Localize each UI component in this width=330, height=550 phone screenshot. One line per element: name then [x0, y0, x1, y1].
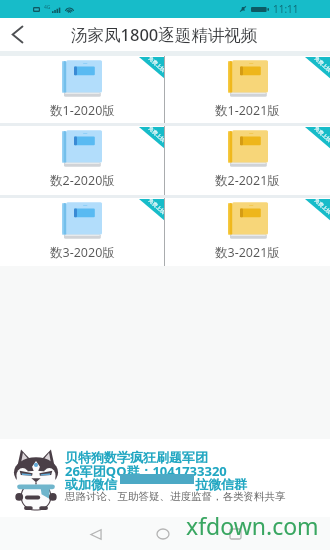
staticText: 免费上线: [314, 197, 330, 215]
staticText: 26军团QQ群：1041733320: [65, 462, 227, 480]
button[interactable]: 数2-2021版: [165, 126, 330, 195]
staticText: 数3-2021版: [215, 244, 280, 261]
staticText: 思路讨论、互助答疑、进度监督，各类资料共享: [65, 490, 286, 503]
staticText: 数1-2020版: [50, 102, 115, 119]
button[interactable]: 数1-2020版: [0, 56, 164, 123]
button[interactable]: 数3-2021版: [165, 198, 330, 266]
button[interactable]: Home: [149, 520, 177, 548]
staticText: 免费上线: [148, 197, 166, 215]
staticText: 数3-2020版: [50, 244, 115, 261]
staticText: 免费上线: [314, 55, 330, 73]
staticText: 免费上线: [148, 125, 166, 143]
staticText: 或加微信 拉微信群: [65, 475, 247, 493]
button[interactable]: 数1-2021版: [165, 56, 330, 123]
staticText: 数2-2021版: [215, 172, 280, 189]
staticText: 数2-2020版: [50, 172, 115, 189]
staticText: 免费上线: [314, 125, 330, 143]
staticText: xfdown.com: [186, 510, 319, 541]
button[interactable]: Back: [82, 520, 110, 548]
button[interactable]: 数2-2020版: [0, 126, 164, 195]
staticText: 11:11: [273, 2, 299, 16]
staticText: 贝特狗数学疯狂刷题军团: [65, 449, 208, 465]
staticText: 4G: [44, 4, 51, 11]
button[interactable]: Back: [0, 18, 34, 51]
button[interactable]: Recents: [221, 520, 249, 548]
staticText: 免费上线: [148, 55, 166, 73]
staticText: 汤家凤1800逐题精讲视频: [71, 23, 258, 46]
staticText: 数1-2021版: [215, 102, 280, 119]
button[interactable]: 数3-2020版: [0, 198, 164, 266]
